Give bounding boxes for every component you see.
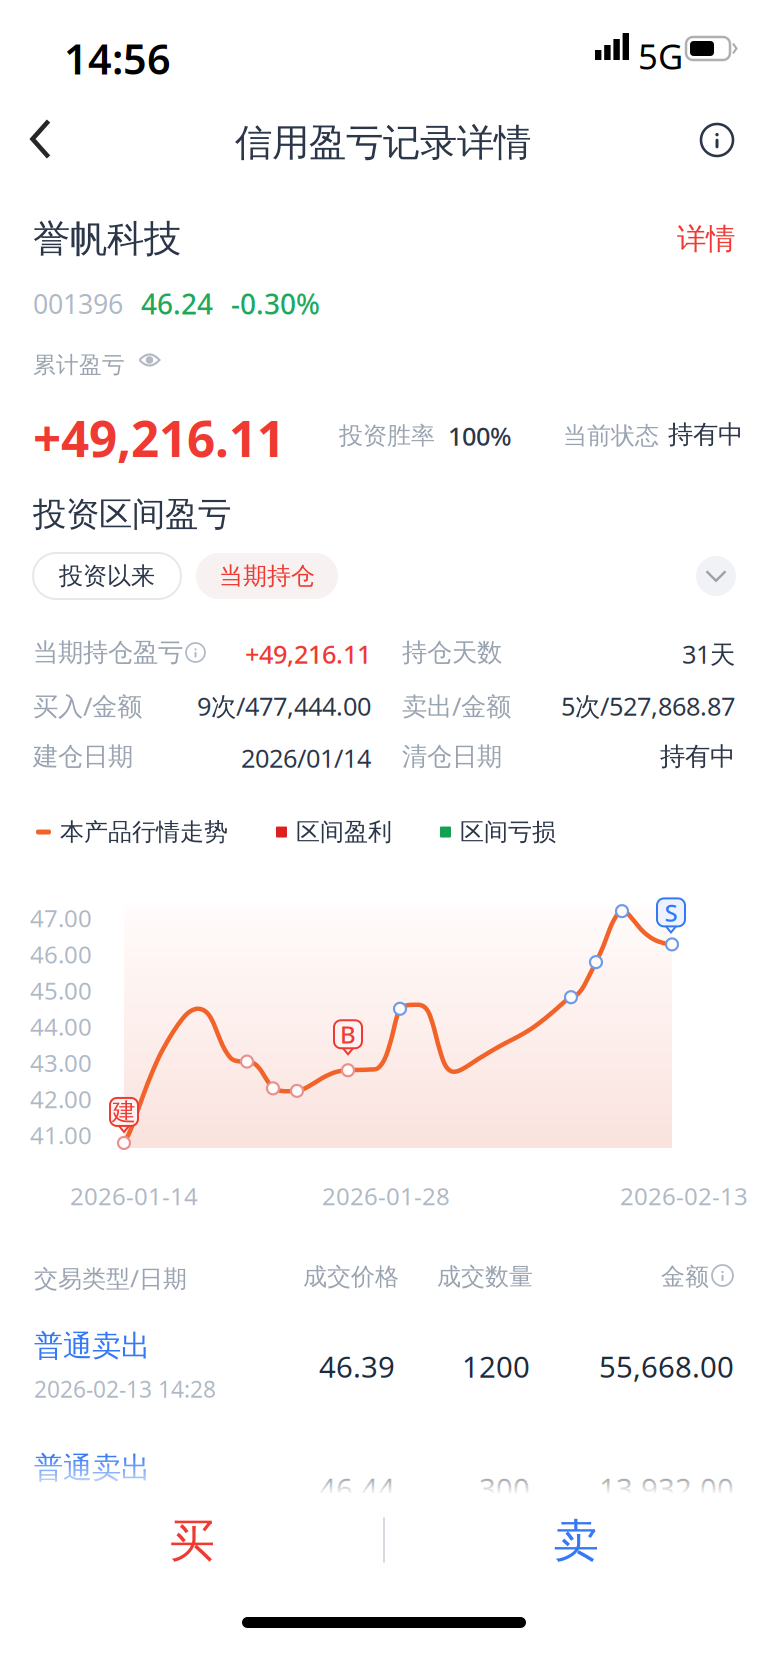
staticText: 13,932.00: [599, 1469, 734, 1508]
staticText: +49,216.11: [245, 637, 371, 671]
staticText: 5G: [638, 33, 683, 79]
staticText: 46.00: [30, 938, 92, 970]
staticText: 1200: [462, 1347, 530, 1386]
staticText: 建: [112, 1097, 136, 1127]
staticText: 信用盈亏记录详情: [235, 120, 531, 166]
staticText: 区间亏损: [460, 817, 556, 847]
staticText: 成交数量: [437, 1262, 533, 1291]
staticText: 卖: [553, 1513, 598, 1569]
staticText: 14:56: [64, 31, 171, 86]
staticText: 9次/477,444.00: [197, 689, 371, 723]
staticText: 清仓日期: [402, 741, 502, 772]
button[interactable]: Expand section: [696, 556, 736, 596]
staticText: 300: [479, 1469, 530, 1508]
staticText: 2026-02-13 14:28: [34, 1374, 216, 1404]
staticText: 持有中: [660, 741, 735, 772]
staticText: 投资区间盈亏: [33, 494, 231, 535]
staticText: 100%: [448, 419, 512, 453]
staticText: 2026-02-13: [620, 1180, 748, 1212]
staticText: 45.00: [30, 974, 92, 1006]
staticText: 2026-02-13 14:28: [34, 1496, 216, 1526]
staticText: 2026-01-28: [322, 1180, 450, 1212]
staticText: S: [664, 896, 677, 928]
staticText: 成交价格: [303, 1262, 399, 1291]
staticText: 46.24: [141, 285, 213, 322]
staticText: 44.00: [30, 1011, 92, 1042]
staticText: 当期持仓盈亏: [33, 637, 183, 668]
staticText: 金额: [661, 1262, 709, 1291]
staticText: 普通卖出: [34, 1328, 150, 1364]
staticText: 当期持仓: [219, 561, 315, 591]
staticText: +49,216.11: [33, 405, 285, 470]
staticText: 46.44: [319, 1469, 395, 1508]
staticText: 投资以来: [59, 561, 155, 591]
button[interactable]: Back: [10, 111, 72, 167]
staticText: 买: [169, 1513, 214, 1569]
staticText: 本产品行情走势: [60, 817, 228, 847]
staticText: 持有中: [668, 419, 743, 450]
button[interactable]: 详情: [677, 221, 735, 257]
staticText: 55,668.00: [599, 1347, 734, 1386]
staticText: 2026-01-14: [70, 1180, 198, 1212]
staticText: 46.39: [319, 1347, 395, 1386]
staticText: 卖出/金额: [402, 689, 511, 723]
staticText: 2026/01/14: [241, 741, 371, 775]
button[interactable]: 卖: [384, 1493, 768, 1589]
staticText: 43.00: [30, 1047, 92, 1079]
staticText: 买入/金额: [33, 689, 142, 723]
staticText: 累计盈亏: [33, 351, 125, 379]
button[interactable]: 当期持仓: [196, 553, 338, 599]
staticText: 001396: [33, 286, 123, 321]
button[interactable]: Toggle amount visibility: [139, 352, 160, 368]
staticText: 建仓日期: [33, 741, 133, 772]
staticText: 31天: [682, 637, 735, 671]
staticText: 持仓天数: [402, 637, 502, 668]
staticText: -0.30%: [231, 285, 320, 322]
button[interactable]: 买: [0, 1493, 384, 1589]
staticText: 誉帆科技: [33, 216, 181, 262]
staticText: 41.00: [30, 1119, 92, 1151]
staticText: 详情: [677, 221, 735, 257]
button[interactable]: More info: [689, 112, 745, 168]
staticText: 5次/527,868.87: [561, 689, 735, 723]
button[interactable]: 投资以来: [33, 553, 181, 599]
staticText: 42.00: [30, 1083, 92, 1115]
staticText: 交易类型/日期: [34, 1262, 187, 1294]
staticText: 区间盈利: [296, 817, 392, 847]
staticText: 投资胜率: [339, 421, 435, 450]
staticText: B: [340, 1018, 356, 1050]
staticText: 当前状态: [563, 421, 659, 450]
staticText: 普通卖出: [34, 1450, 150, 1486]
staticText: 47.00: [30, 902, 92, 934]
